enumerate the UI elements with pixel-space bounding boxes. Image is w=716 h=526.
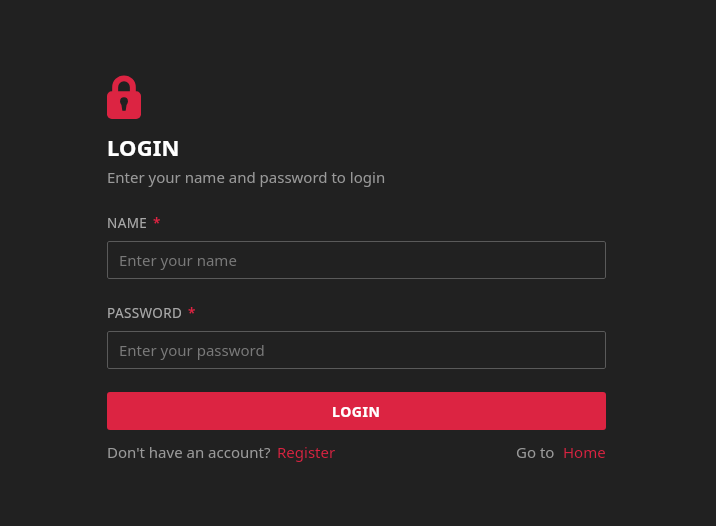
staticText: Home bbox=[563, 442, 606, 462]
staticText: PASSWORD bbox=[107, 304, 183, 322]
staticText: Enter your name and password to login bbox=[107, 167, 386, 187]
staticText: LOGIN bbox=[332, 402, 381, 421]
staticText: Enter your name bbox=[119, 250, 237, 270]
staticText: Go to bbox=[516, 442, 555, 462]
other: Lock bbox=[107, 76, 141, 119]
button[interactable]: Enter your password bbox=[107, 331, 606, 369]
button[interactable]: Register bbox=[277, 442, 336, 462]
staticText: Enter your password bbox=[119, 340, 265, 360]
button[interactable]: Enter your name bbox=[107, 241, 606, 279]
staticText: Don't have an account? bbox=[107, 442, 271, 462]
button[interactable]: LOGIN bbox=[107, 392, 606, 430]
button[interactable]: Home bbox=[563, 442, 606, 462]
staticText: * bbox=[153, 214, 161, 232]
staticText: NAME bbox=[107, 214, 148, 232]
staticText: Register bbox=[277, 442, 336, 462]
staticText: LOGIN bbox=[107, 132, 180, 162]
staticText: * bbox=[188, 304, 196, 322]
